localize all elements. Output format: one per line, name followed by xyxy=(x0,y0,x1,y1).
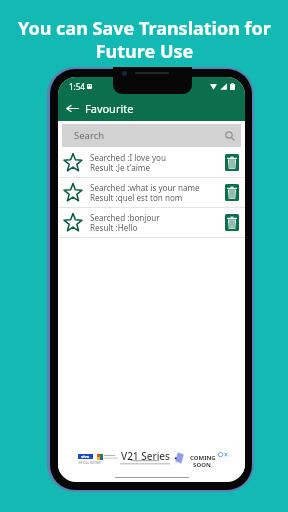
staticText: Searched :bonjour Result :Hello xyxy=(90,212,160,233)
staticText: You can Save Translation for Future Use xyxy=(18,16,271,64)
staticText: 1:54 xyxy=(69,81,85,92)
staticText: Searched :what is your name Result :quel… xyxy=(90,182,200,203)
staticText: Search xyxy=(74,129,105,142)
button[interactable]: Searched :what is your name Result :quel… xyxy=(58,178,245,207)
staticText: COMING SOON xyxy=(190,454,216,469)
button[interactable]: Delete xyxy=(225,154,239,171)
staticText: Favourite xyxy=(85,101,134,116)
staticText: vivo xyxy=(81,454,90,459)
button[interactable]: Search xyxy=(62,124,241,147)
button[interactable]: Searched :I love you Result :Je t'aime xyxy=(58,148,245,177)
button[interactable]: vivo xyxy=(58,445,245,473)
button[interactable]: Back xyxy=(63,98,81,118)
staticText: V21 Series xyxy=(121,449,170,463)
button[interactable]: Searched :bonjour Result :Hello xyxy=(58,208,245,237)
button[interactable]: Delete xyxy=(225,214,239,231)
button[interactable]: Delete xyxy=(225,184,239,201)
staticText: Searched :I love you Result :Je t'aime xyxy=(90,152,166,173)
staticText: OFFICIAL PARTNER xyxy=(78,461,101,465)
